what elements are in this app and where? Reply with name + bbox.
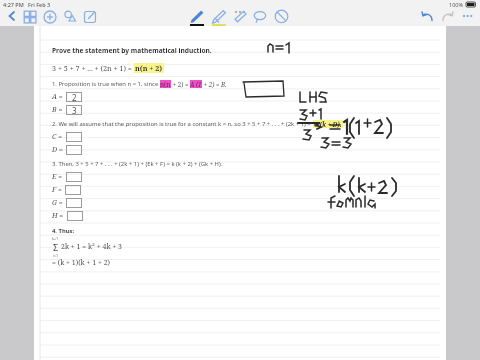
button[interactable] (66, 198, 82, 208)
button[interactable]: Eraser (232, 9, 248, 26)
button[interactable]: 2 (66, 92, 82, 102)
staticText: 3 (72, 105, 77, 115)
button[interactable]: Highlighter (210, 9, 228, 26)
button[interactable]: 3 (66, 105, 82, 115)
staticText: n(n (160, 80, 171, 88)
button[interactable]: Pen (188, 9, 206, 26)
button[interactable]: Redo (440, 9, 455, 26)
staticText: C = (52, 132, 63, 142)
staticText: + 2) = (171, 80, 190, 88)
staticText: B = (52, 105, 63, 115)
button[interactable]: Thumbnails (22, 9, 38, 26)
staticText: k+1 (52, 236, 59, 241)
staticText: i=1 (53, 253, 59, 258)
button[interactable]: More (460, 9, 475, 26)
staticText: 2 (72, 92, 77, 102)
staticText: A = (52, 92, 63, 102)
staticText: 3. Then, 3 + 5 + 7 + . . . + (2k + 1) + … (52, 160, 223, 168)
staticText: 2. We will assume that the proposition i… (52, 120, 313, 128)
button[interactable] (66, 172, 82, 182)
staticText: F = (52, 185, 62, 195)
button[interactable] (67, 211, 83, 221)
staticText: H = (52, 211, 64, 221)
staticText: 4. Thus: (52, 227, 75, 235)
staticText: 1. Proposition is true when n = 1, since (52, 80, 160, 88)
button[interactable] (66, 132, 82, 142)
button[interactable]: Add page (42, 9, 58, 26)
button[interactable]: Back (5, 9, 19, 26)
staticText: G = (52, 198, 63, 208)
staticText: E = (52, 172, 63, 182)
staticText: Σ (53, 241, 59, 253)
button[interactable]: Clear (273, 9, 290, 26)
button[interactable]: Undo (420, 9, 435, 26)
staticText: A (1 (190, 80, 202, 88)
button[interactable] (66, 145, 82, 155)
button[interactable]: Shapes (62, 9, 78, 26)
staticText: + 2) = B. (202, 80, 227, 88)
staticText: Prove the statement by mathematical indu… (52, 46, 212, 55)
staticText: 4:27 PM Fri Feb 3 (3, 1, 51, 8)
staticText: C (k + D). (314, 120, 342, 128)
button[interactable]: Lasso (252, 9, 269, 26)
staticText: 3 + 5 + 7 + ... + (2n + 1) = (52, 63, 134, 73)
staticText: D = (52, 145, 63, 155)
staticText: n(n + 2) (135, 63, 163, 73)
staticText: 100% (449, 1, 464, 8)
button[interactable] (65, 185, 81, 195)
staticText: = (k + 1)(k + 1 + 2) (52, 258, 111, 268)
button[interactable]: Compose (82, 9, 98, 26)
staticText: 2k + 1 = k² + 4k + 3 (61, 242, 122, 252)
